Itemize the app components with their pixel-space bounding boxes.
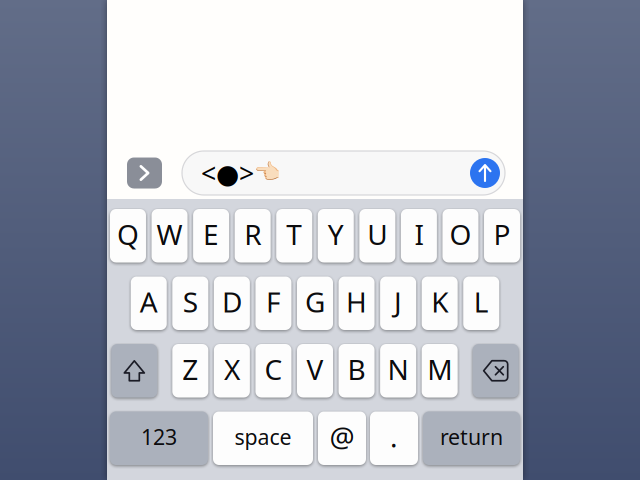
button[interactable]: J [380,276,416,330]
button[interactable]: return [423,411,520,465]
staticText: Z [182,351,198,388]
staticText: T [286,216,302,253]
staticText: U [367,216,387,253]
staticText: R [244,216,261,253]
staticText: V [306,351,323,388]
button[interactable]: K [422,276,458,330]
button[interactable]: W [151,209,187,262]
button[interactable]: B [339,344,375,397]
staticText: Y [328,216,344,253]
button[interactable]: P [484,209,520,262]
staticText: P [493,216,510,253]
button[interactable]: Shift [111,344,157,397]
button[interactable]: V [297,344,333,397]
button[interactable]: U [359,209,395,262]
button[interactable]: F [255,276,291,330]
staticText: A [140,283,158,320]
staticText: space [234,423,291,451]
staticText: J [394,283,402,320]
button[interactable]: . [370,411,418,465]
staticText: @ [329,418,354,455]
staticText: . [390,418,398,455]
staticText: S [183,283,198,320]
staticText: W [156,216,182,253]
staticText: L [474,283,489,320]
staticText: 👈🏻 [254,160,281,184]
staticText: O [449,216,471,253]
button[interactable]: O [442,209,478,262]
button[interactable]: A [131,276,167,330]
button[interactable]: Y [318,209,354,262]
staticText: H [346,283,367,320]
staticText: M [427,351,452,388]
button[interactable]: C [255,344,291,397]
button[interactable]: D [214,276,250,330]
staticText: return [440,423,503,451]
staticText: <●> [201,155,254,191]
staticText: E [203,216,219,253]
button[interactable]: H [339,276,375,330]
button[interactable]: G [297,276,333,330]
button[interactable]: App drawer [127,157,162,188]
staticText: K [431,283,448,320]
button[interactable]: L [463,276,499,330]
button[interactable]: @ [318,411,366,465]
button[interactable]: R [235,209,271,262]
button[interactable]: Z [172,344,208,397]
button[interactable]: N [380,344,416,397]
button[interactable]: Q [110,209,146,262]
button[interactable]: I [401,209,437,262]
staticText: G [305,283,325,320]
button[interactable]: M [422,344,458,397]
button[interactable]: 123 [110,411,208,465]
staticText: X [224,351,240,388]
staticText: Q [117,216,139,253]
staticText: 123 [141,423,177,451]
staticText: C [264,351,282,388]
staticText: B [348,351,366,388]
staticText: I [414,216,423,253]
button[interactable]: Delete [473,344,519,397]
button[interactable]: S [172,276,208,330]
button[interactable]: Send [470,158,500,188]
button[interactable]: space [213,411,313,465]
button[interactable]: E [193,209,229,262]
staticText: F [266,283,281,320]
button[interactable]: T [276,209,312,262]
staticText: N [388,351,409,388]
button[interactable]: X [214,344,250,397]
staticText: D [222,283,242,320]
